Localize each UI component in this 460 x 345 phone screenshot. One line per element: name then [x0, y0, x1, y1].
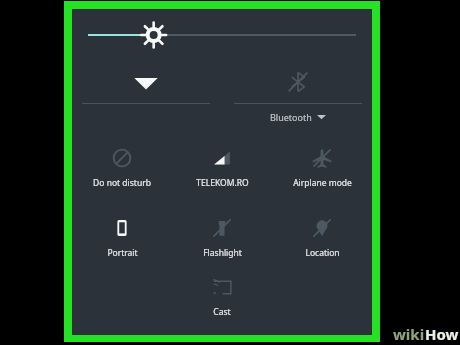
staticText: How	[425, 324, 459, 344]
button[interactable]: Flashlight	[172, 203, 272, 273]
staticText: Location	[305, 247, 340, 259]
staticText: Airplane mode	[293, 177, 352, 189]
staticText: Cast	[213, 306, 231, 318]
staticText: Bluetooth	[270, 111, 312, 123]
button[interactable]: Do not disturb	[72, 133, 172, 203]
staticText: Do not disturb	[93, 177, 151, 189]
button[interactable]: Portrait	[72, 203, 172, 273]
button[interactable]: Cast	[172, 273, 272, 318]
button[interactable]: Airplane mode	[272, 133, 372, 203]
staticText: TELEKOM.RO	[196, 177, 249, 189]
button[interactable]: Bluetooth	[234, 61, 362, 133]
button[interactable]: Brightness slider	[72, 9, 372, 61]
staticText: Flashlight	[203, 247, 242, 259]
button[interactable]: Location	[272, 203, 372, 273]
button[interactable]: TELEKOM.RO	[172, 133, 272, 203]
staticText: Portrait	[107, 247, 138, 259]
staticText: wiki	[393, 324, 425, 344]
button[interactable]: Wi-Fi	[82, 61, 210, 133]
